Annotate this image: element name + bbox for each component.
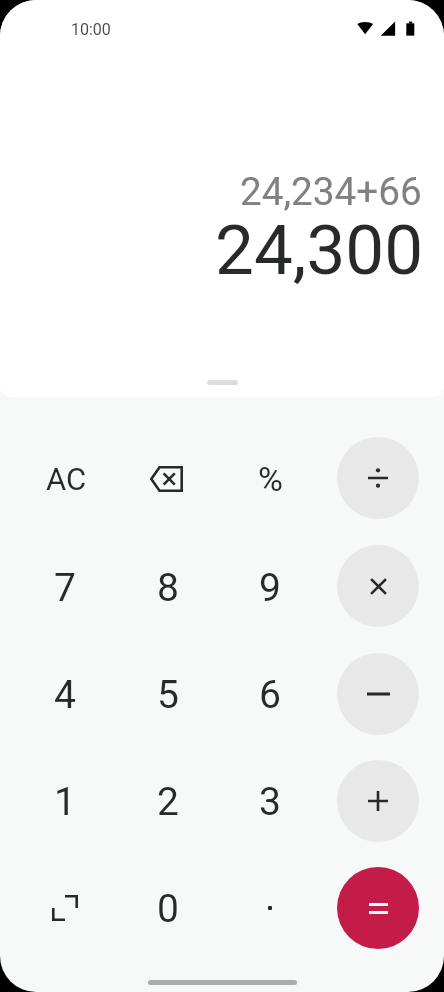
button[interactable]: Divide — [337, 437, 419, 519]
staticText: 6 — [259, 672, 281, 718]
staticText: 24,300 — [215, 210, 424, 291]
button[interactable]: Plus — [337, 760, 419, 842]
staticText: 1 — [54, 779, 76, 825]
staticText: 8 — [157, 565, 179, 611]
button[interactable]: Decimal point — [224, 862, 316, 954]
staticText: 24,234+66 — [240, 169, 422, 214]
button[interactable]: All clear — [20, 433, 112, 525]
button[interactable]: Three — [224, 756, 316, 848]
button[interactable]: Multiply — [337, 545, 419, 627]
staticText: 2 — [157, 779, 179, 825]
button[interactable]: Zero — [122, 863, 214, 955]
button[interactable]: Minus — [337, 653, 419, 735]
button[interactable]: Two — [122, 756, 214, 848]
button[interactable]: Four — [19, 649, 111, 741]
button[interactable]: Eight — [122, 542, 214, 634]
button[interactable]: Backspace — [122, 433, 214, 525]
staticText: 10:00 — [71, 20, 111, 39]
staticText: % — [258, 459, 283, 499]
staticText: 4 — [54, 672, 76, 718]
button[interactable]: One — [19, 756, 111, 848]
button[interactable]: Equals — [337, 867, 419, 949]
button[interactable]: Drag handle — [207, 380, 238, 385]
staticText: AC — [46, 461, 87, 497]
button[interactable]: Six — [224, 649, 316, 741]
button[interactable]: Expand — [19, 862, 111, 954]
staticText: 3 — [259, 779, 281, 825]
staticText: 7 — [54, 565, 76, 611]
button[interactable]: Nine — [224, 542, 316, 634]
button[interactable]: Percent — [224, 433, 316, 525]
staticText: 9 — [259, 565, 281, 611]
button[interactable]: Seven — [19, 542, 111, 634]
staticText: 5 — [157, 672, 179, 718]
button[interactable]: Five — [122, 649, 214, 741]
staticText: 0 — [157, 886, 179, 932]
